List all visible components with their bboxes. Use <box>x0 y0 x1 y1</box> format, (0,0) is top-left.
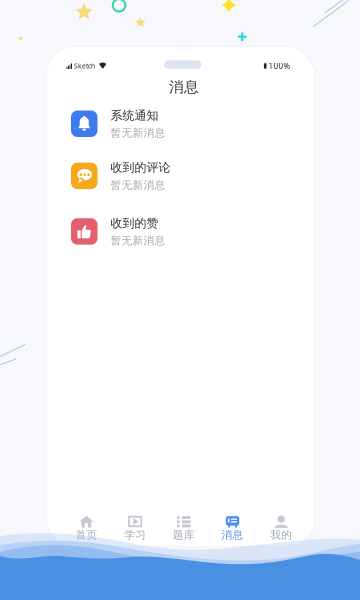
staticText: 暂无新消息 <box>110 234 165 247</box>
staticText: 我的 <box>270 528 292 541</box>
staticText: 收到的赞 <box>110 216 158 230</box>
button[interactable]: 系统通知 <box>71 110 299 137</box>
staticText: 暂无新消息 <box>110 178 165 192</box>
button[interactable]: 消息 <box>208 512 257 540</box>
button[interactable]: 我的 <box>257 512 306 540</box>
button[interactable]: 收到的赞 <box>71 218 299 245</box>
staticText: 100% <box>268 61 290 71</box>
staticText: 暂无新消息 <box>110 126 165 139</box>
staticText: 系统通知 <box>110 108 158 123</box>
staticText: 收到的评论 <box>110 160 170 175</box>
button[interactable]: 题库 <box>159 512 208 540</box>
staticText: 首页 <box>75 528 97 541</box>
staticText: 消息 <box>222 528 244 541</box>
button[interactable]: 学习 <box>111 512 159 540</box>
staticText: 题库 <box>173 528 195 541</box>
staticText: 消息 <box>169 78 199 96</box>
button[interactable]: 首页 <box>62 512 111 540</box>
button[interactable]: 收到的评论 <box>71 162 299 190</box>
staticText: 学习 <box>124 528 146 541</box>
staticText: Sketch <box>74 62 95 70</box>
